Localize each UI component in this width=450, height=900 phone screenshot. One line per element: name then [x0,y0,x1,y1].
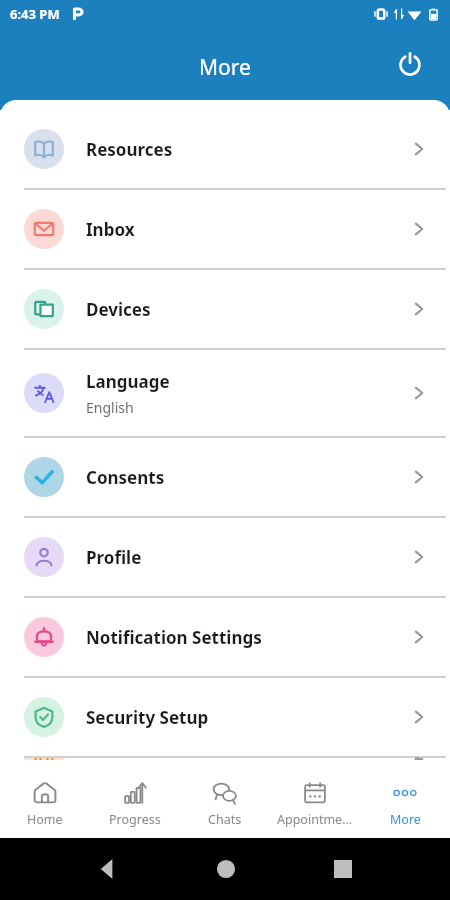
staticText: More [199,53,251,82]
staticText: More [390,811,421,828]
staticText: Progress [109,811,161,828]
button[interactable]: Resources [0,110,450,188]
button[interactable]: Support [0,758,450,760]
staticText: Chats [208,811,242,828]
staticText: Profile [86,546,142,569]
staticText: Resources [86,138,173,161]
button[interactable]: Appointme… [270,770,360,838]
button[interactable]: Chats [180,770,270,838]
staticText: Home [27,811,63,828]
staticText: Inbox [86,218,135,241]
staticText: Devices [86,298,151,321]
button[interactable]: Profile [0,518,450,596]
staticText: 6:43 PM [10,5,60,23]
button[interactable]: Progress [90,770,180,838]
button[interactable]: Home [0,770,90,838]
staticText: Consents [86,466,165,489]
button[interactable]: Inbox [0,190,450,268]
staticText: Security Setup [86,706,209,729]
staticText: Language [86,370,170,393]
button[interactable]: Security Setup [0,678,450,756]
staticText: Notification Settings [86,626,262,649]
button[interactable]: Notification Settings [0,598,450,676]
button[interactable]: Language [0,350,450,436]
button[interactable]: Devices [0,270,450,348]
button[interactable]: Consents [0,438,450,516]
staticText: Appointme… [277,811,353,828]
button[interactable]: Log out [388,43,432,87]
staticText: English [86,398,134,417]
button[interactable]: More [360,770,450,838]
